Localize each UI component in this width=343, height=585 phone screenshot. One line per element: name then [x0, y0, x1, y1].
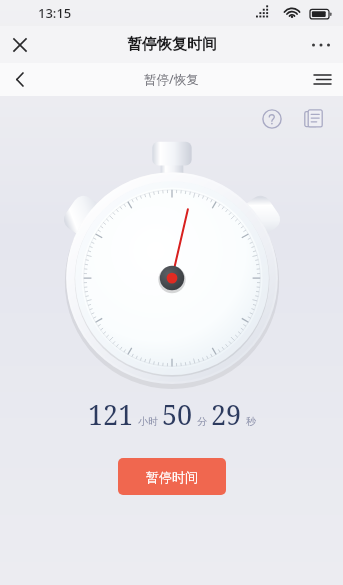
staticText: 秒 — [246, 415, 256, 428]
button[interactable]: Close — [0, 26, 40, 63]
button[interactable]: Back — [0, 63, 38, 96]
staticText: 暂停恢复时间 — [127, 35, 217, 54]
button[interactable]: Menu — [301, 63, 343, 96]
button[interactable]: More options — [299, 26, 343, 63]
staticText: 29 — [211, 396, 242, 433]
staticText: 50 — [162, 396, 193, 433]
staticText: 分 — [197, 415, 207, 428]
staticText: 暂停/恢复 — [144, 71, 199, 88]
button[interactable]: 暂停时间 — [118, 458, 226, 495]
staticText: 小时 — [138, 415, 158, 428]
button[interactable]: Help — [255, 102, 289, 136]
button[interactable]: Records — [297, 102, 331, 136]
staticText: 13:15 — [38, 4, 72, 22]
staticText: 121 — [88, 396, 134, 433]
staticText: 暂停时间 — [146, 469, 198, 485]
